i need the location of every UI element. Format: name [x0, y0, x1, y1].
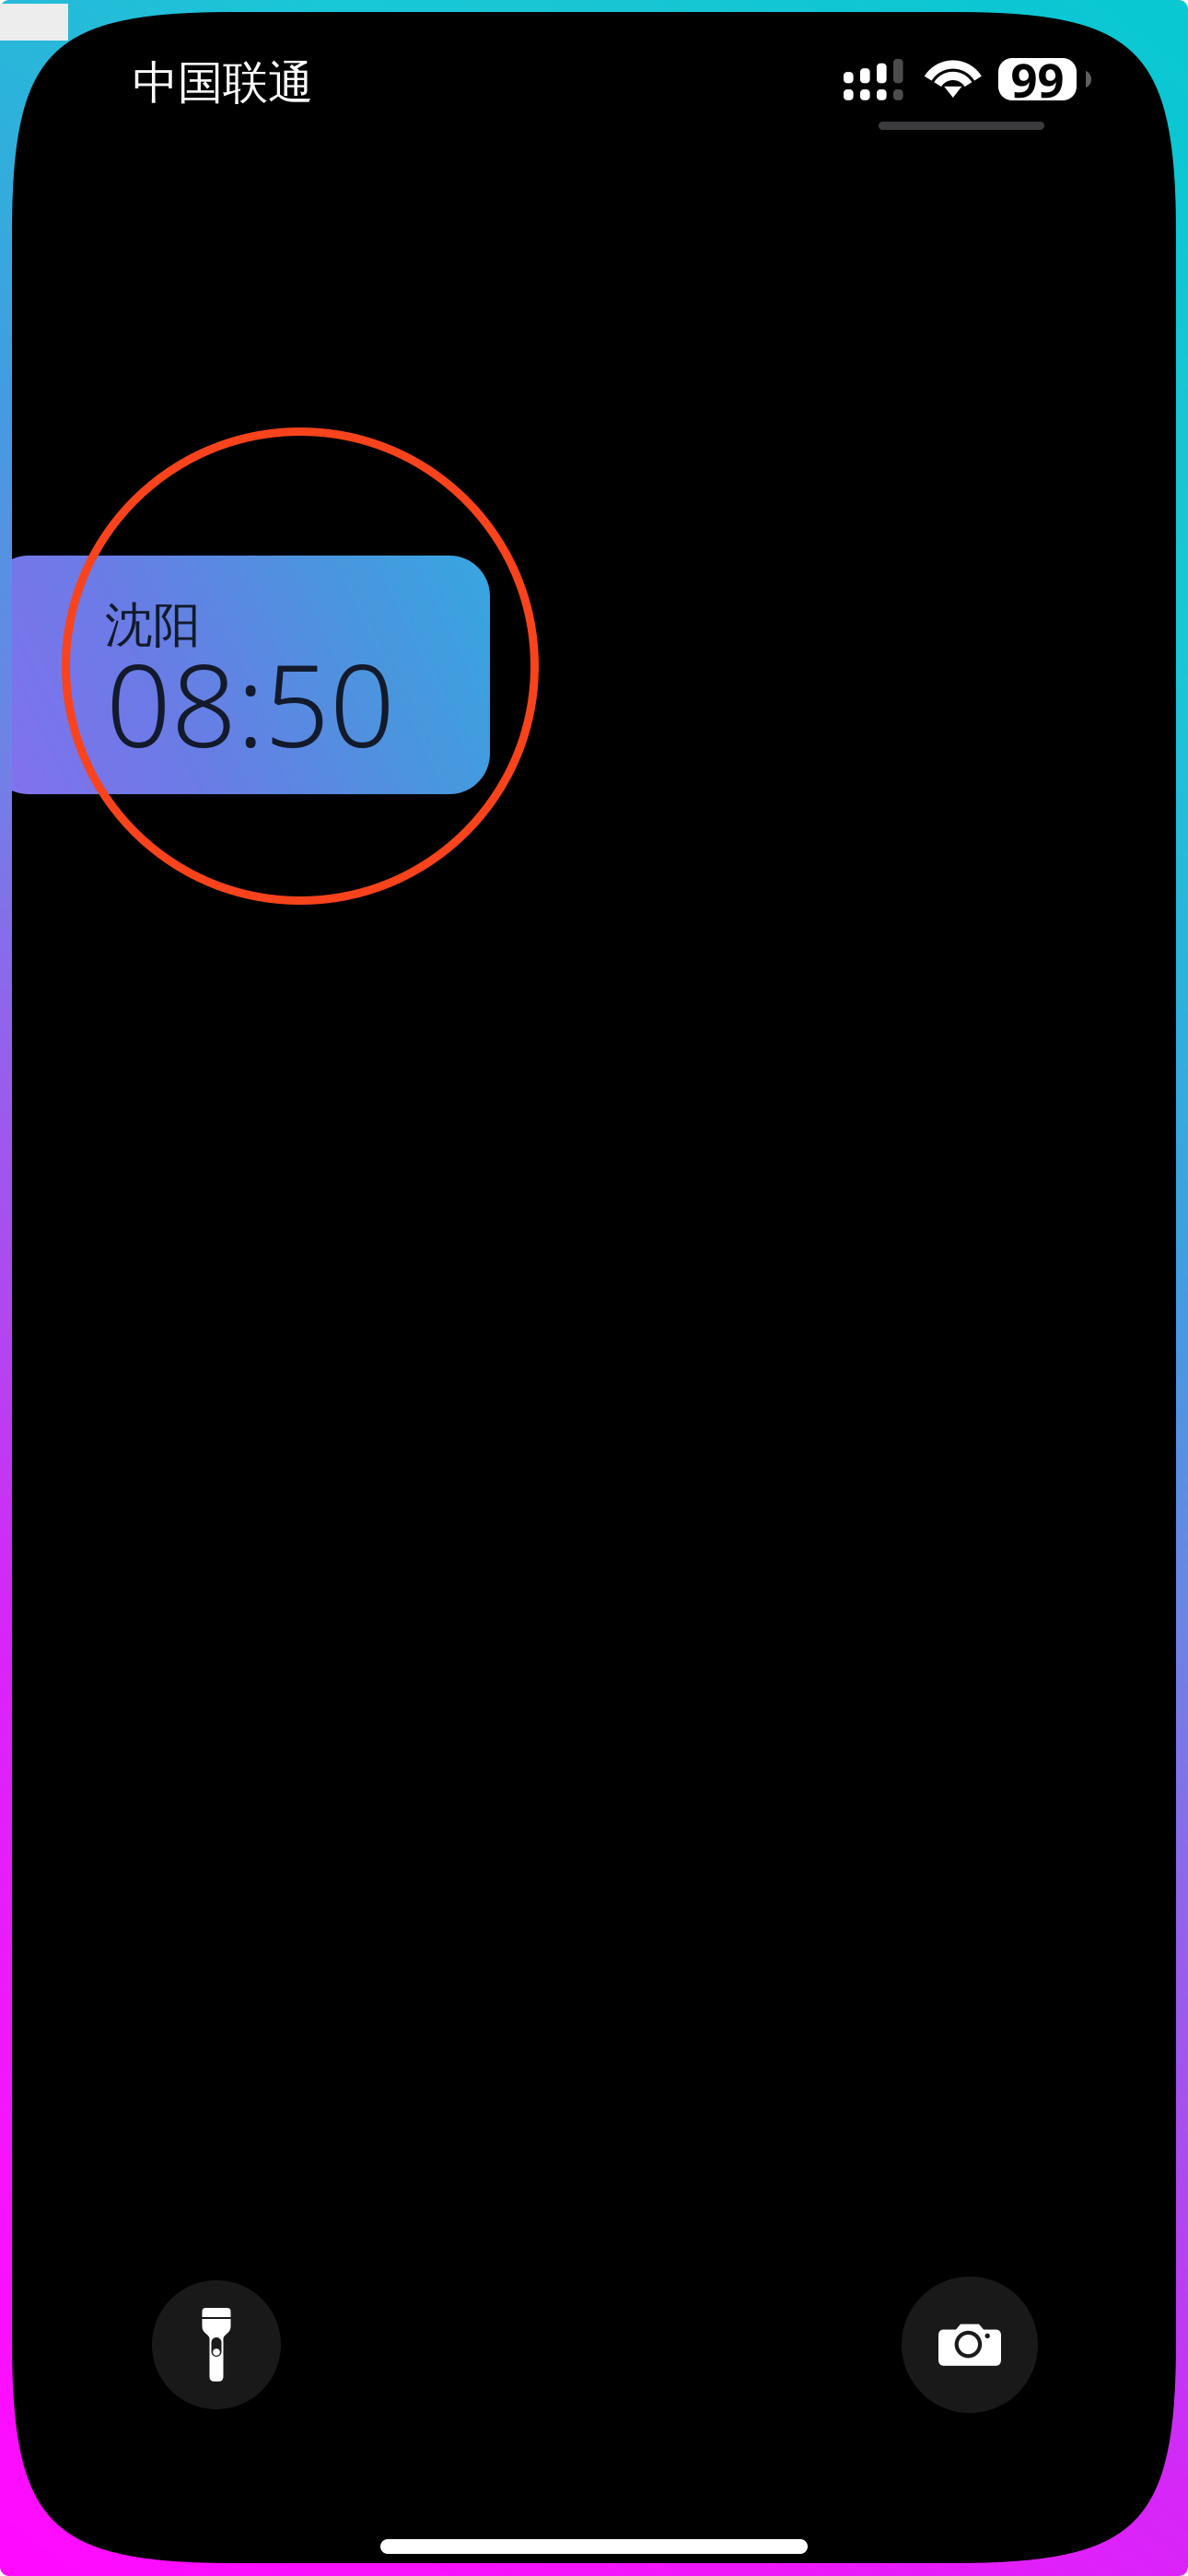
button[interactable]: Flashlight [152, 2280, 281, 2409]
button[interactable]: Camera [902, 2277, 1038, 2413]
staticText: 中国联通 [133, 55, 313, 111]
staticText: 99 [1011, 48, 1064, 110]
staticText: 08:50 [106, 627, 395, 779]
staticText: 沈阳 [105, 596, 201, 655]
